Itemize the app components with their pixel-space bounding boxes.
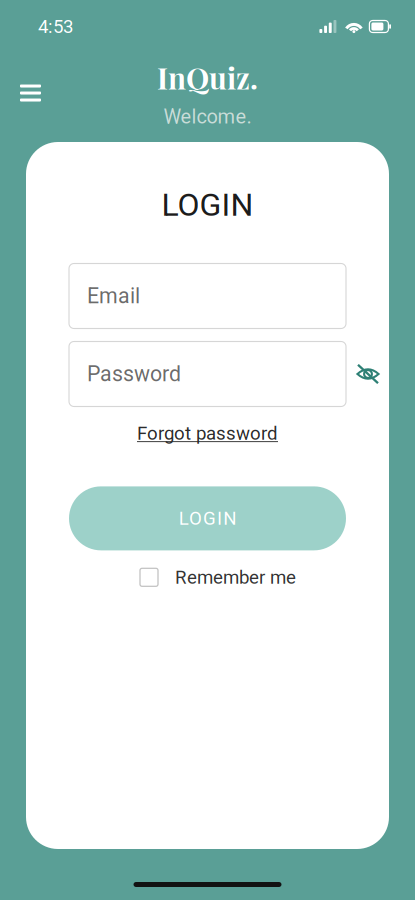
staticText: Welcome. — [163, 105, 251, 128]
staticText: Remember me — [175, 566, 296, 588]
staticText: Password — [87, 361, 181, 386]
button[interactable]: LOGIN — [69, 486, 346, 550]
staticText: LOGIN — [161, 186, 253, 223]
button[interactable]: Show password — [350, 354, 386, 394]
button[interactable]: Remember me — [119, 563, 296, 591]
button[interactable]: Menu — [10, 74, 51, 111]
staticText: Forgot password — [137, 422, 278, 444]
button[interactable]: Forgot password — [133, 420, 282, 446]
staticText: LOGIN — [179, 507, 236, 529]
staticText: InQuiz. — [157, 58, 258, 97]
staticText: 4:53 — [38, 16, 73, 37]
staticText: Email — [87, 283, 140, 308]
